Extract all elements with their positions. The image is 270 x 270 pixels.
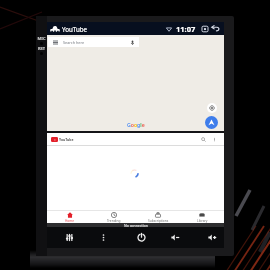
staticText: No connection bbox=[124, 223, 148, 227]
button[interactable]: Back bbox=[211, 24, 220, 33]
button[interactable]: Volume down bbox=[164, 227, 186, 248]
button[interactable]: Home bbox=[47, 211, 92, 223]
button[interactable]: Trending bbox=[92, 211, 136, 223]
button[interactable]: Recent apps bbox=[201, 25, 209, 33]
staticText: RST bbox=[35, 46, 48, 51]
button[interactable]: Directions bbox=[205, 116, 218, 129]
staticText: Search here bbox=[63, 40, 85, 45]
staticText: Google bbox=[127, 121, 145, 128]
button[interactable]: More bbox=[92, 227, 114, 248]
button[interactable]: Search here bbox=[48, 37, 139, 47]
staticText: YouTube bbox=[62, 25, 88, 33]
button[interactable]: My location bbox=[207, 103, 217, 113]
button[interactable]: Volume up bbox=[201, 227, 223, 248]
button[interactable]: Voice search bbox=[130, 40, 135, 45]
staticText: MIC bbox=[35, 36, 48, 41]
button[interactable]: Power bbox=[130, 227, 152, 248]
button[interactable]: Library bbox=[180, 211, 224, 223]
staticText: 11:07 bbox=[176, 24, 196, 34]
button[interactable]: More options bbox=[212, 137, 217, 142]
staticText: Library bbox=[197, 219, 208, 223]
staticText: YouTube bbox=[59, 137, 74, 142]
button[interactable]: Search bbox=[201, 137, 206, 142]
button[interactable]: Subscriptions bbox=[136, 211, 180, 223]
button[interactable]: Equalizer bbox=[58, 227, 80, 248]
staticText: Home bbox=[65, 219, 75, 223]
staticText: Subscriptions bbox=[148, 219, 169, 223]
staticText: Trending bbox=[107, 219, 121, 223]
